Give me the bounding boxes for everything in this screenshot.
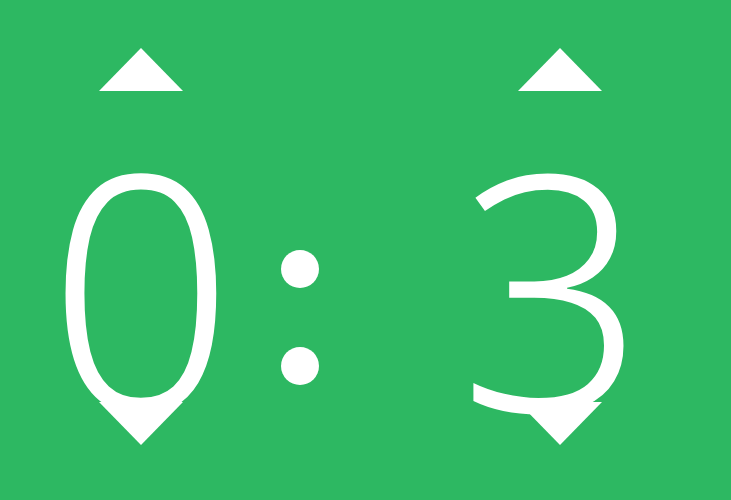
- button[interactable]: 30: [377, 60, 727, 474]
- staticText: 0: [47, 60, 235, 474]
- button[interactable]: 0: [26, 60, 256, 474]
- button[interactable]: Increase minutes: [99, 48, 183, 91]
- staticText: 30: [377, 60, 727, 474]
- button[interactable]: Decrease seconds: [518, 402, 602, 445]
- button[interactable]: Decrease minutes: [99, 402, 183, 445]
- button[interactable]: Increase seconds: [518, 48, 602, 91]
